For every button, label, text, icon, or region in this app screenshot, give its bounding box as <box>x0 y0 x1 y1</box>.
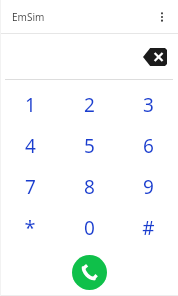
staticText: 6 <box>143 133 154 159</box>
staticText: EmSim <box>12 10 45 24</box>
staticText: 1 <box>25 92 36 118</box>
button[interactable]: 7 <box>0 166 60 207</box>
button[interactable]: 3 <box>119 84 178 125</box>
button[interactable]: Backspace <box>141 45 169 69</box>
button[interactable]: 9 <box>119 166 178 207</box>
button[interactable]: 4 <box>0 125 60 166</box>
staticText: 2 <box>84 92 95 118</box>
staticText: 8 <box>84 174 95 200</box>
staticText: # <box>142 215 155 241</box>
button[interactable]: * <box>0 207 60 248</box>
button[interactable]: 1 <box>0 84 60 125</box>
button[interactable]: More options <box>150 5 174 29</box>
staticText: 0 <box>84 215 95 241</box>
button[interactable]: 5 <box>60 125 119 166</box>
staticText: 5 <box>84 133 95 159</box>
button[interactable]: 6 <box>119 125 178 166</box>
staticText: * <box>24 214 36 241</box>
button[interactable]: 8 <box>60 166 119 207</box>
staticText: 3 <box>143 92 154 118</box>
staticText: 9 <box>143 174 154 200</box>
button[interactable]: Call <box>72 255 107 290</box>
button[interactable]: 0 <box>60 207 119 248</box>
button[interactable]: 2 <box>60 84 119 125</box>
staticText: 7 <box>25 174 36 200</box>
staticText: 4 <box>25 133 36 159</box>
button[interactable]: # <box>119 207 178 248</box>
